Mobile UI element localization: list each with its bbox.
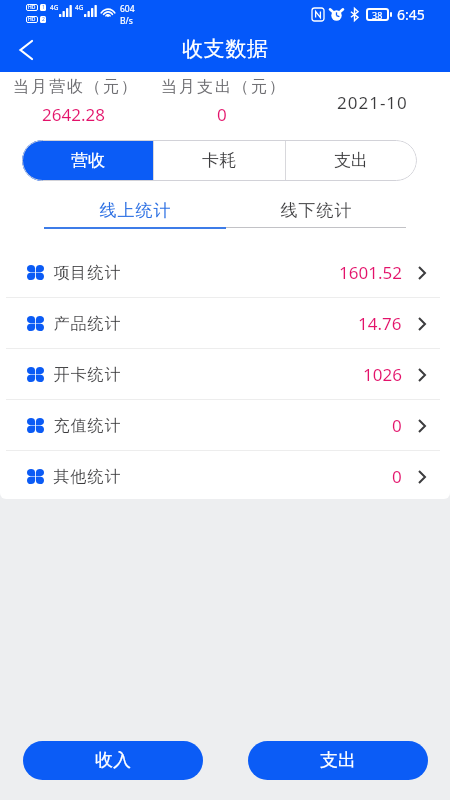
staticText: 充值统计 xyxy=(53,416,121,436)
staticText: 1026 xyxy=(363,363,402,386)
button[interactable]: 支出 xyxy=(285,140,417,181)
staticText: 1 xyxy=(42,4,45,11)
staticText: 0 xyxy=(392,414,402,437)
button[interactable]: 产品统计 xyxy=(0,298,450,349)
button[interactable]: 其他统计 xyxy=(0,451,450,502)
staticText: 当月营收（元） xyxy=(12,77,138,97)
staticText: 2642.28 xyxy=(42,103,105,126)
staticText: 卡耗 xyxy=(202,150,236,171)
staticText: 604 xyxy=(120,3,135,15)
staticText: 营收 xyxy=(71,150,105,171)
button[interactable]: 项目统计 xyxy=(0,247,450,298)
staticText: HD xyxy=(28,4,36,11)
button[interactable]: 充值统计 xyxy=(0,400,450,451)
staticText: 6:45 xyxy=(397,5,425,24)
staticText: 38 xyxy=(372,9,383,21)
staticText: HD xyxy=(28,16,36,23)
staticText: 14.76 xyxy=(358,312,402,335)
staticText: 4G xyxy=(50,3,59,12)
staticText: 2021-10 xyxy=(337,91,408,114)
staticText: 0 xyxy=(217,103,227,126)
button[interactable]: 卡耗 xyxy=(153,140,285,181)
staticText: 收入 xyxy=(95,749,131,772)
button[interactable]: 线下统计 xyxy=(225,195,406,226)
button[interactable]: Back xyxy=(7,31,45,69)
button[interactable]: 开卡统计 xyxy=(0,349,450,400)
staticText: 线上统计 xyxy=(99,200,171,221)
staticText: 项目统计 xyxy=(53,263,121,283)
staticText: 当月支出（元） xyxy=(160,77,286,97)
button[interactable]: 线上统计 xyxy=(44,195,225,226)
staticText: 2 xyxy=(42,16,45,23)
staticText: 收支数据 xyxy=(182,36,269,62)
staticText: 0 xyxy=(392,465,402,488)
staticText: 开卡统计 xyxy=(53,365,121,385)
staticText: 线下统计 xyxy=(280,200,352,221)
staticText: 支出 xyxy=(320,749,356,772)
staticText: 其他统计 xyxy=(53,467,121,487)
staticText: B/s xyxy=(120,15,133,27)
staticText: 4G xyxy=(75,3,84,12)
staticText: 1601.52 xyxy=(339,261,402,284)
button[interactable]: 支出 xyxy=(248,741,428,780)
staticText: 产品统计 xyxy=(53,314,121,334)
button[interactable]: 营收 xyxy=(22,140,153,181)
staticText: 支出 xyxy=(334,150,368,171)
button[interactable]: 收入 xyxy=(23,741,203,780)
